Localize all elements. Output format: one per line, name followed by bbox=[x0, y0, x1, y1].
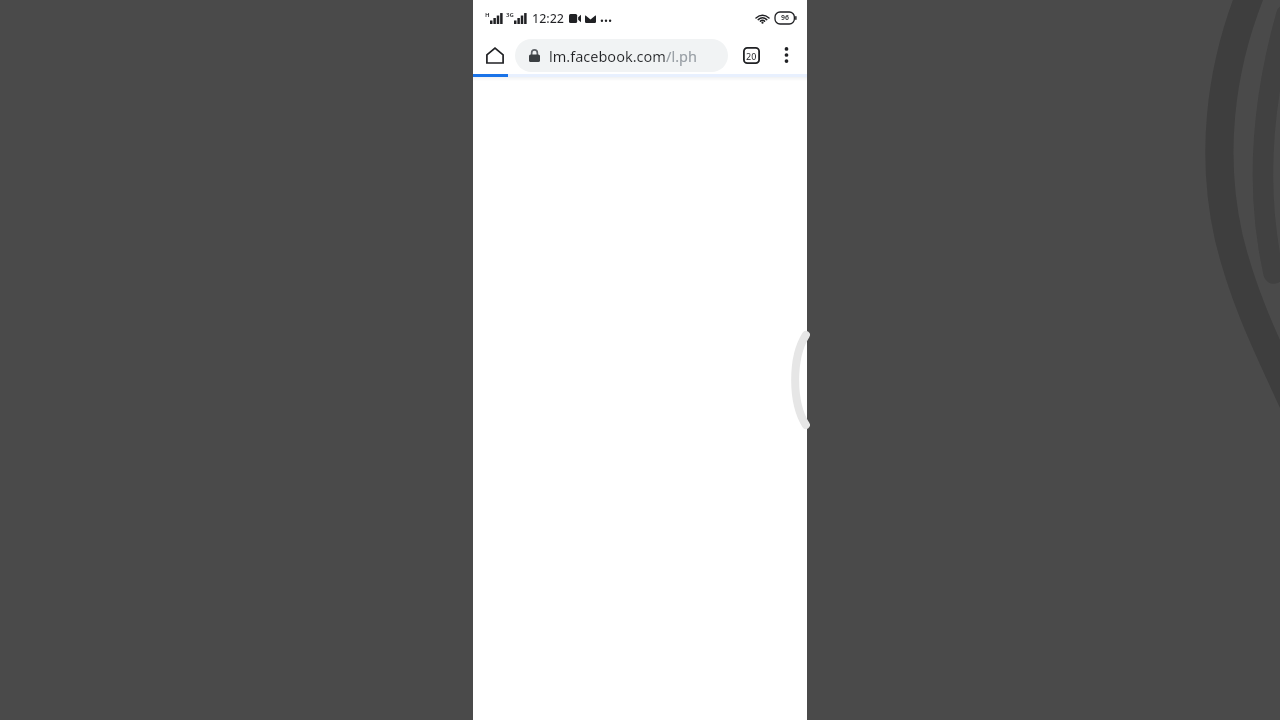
staticText: H bbox=[485, 11, 490, 19]
staticText: 12:22 bbox=[532, 10, 565, 27]
staticText: lm.facebook.com bbox=[549, 46, 666, 66]
staticText: /l.ph bbox=[666, 46, 697, 66]
staticText: 3G bbox=[506, 11, 514, 19]
button[interactable]: Home bbox=[479, 39, 511, 71]
staticText: 20 bbox=[746, 50, 757, 62]
button[interactable]: More options bbox=[771, 40, 801, 70]
button[interactable]: lm.facebook.com bbox=[515, 39, 728, 72]
staticText: 96 bbox=[781, 13, 790, 23]
button[interactable]: Switch tabs, 20 open bbox=[736, 40, 766, 70]
